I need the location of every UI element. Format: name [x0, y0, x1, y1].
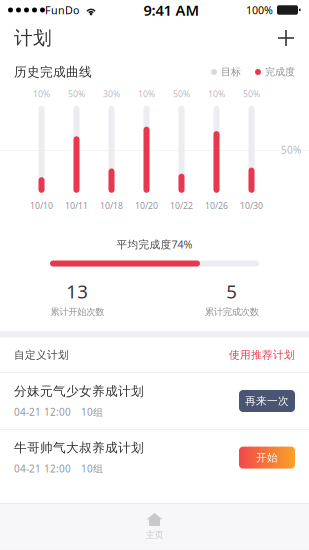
staticText: 50% [281, 143, 301, 157]
staticText: 10/10 [30, 200, 53, 212]
staticText: 10/22 [170, 200, 193, 212]
staticText: 平均完成度74% [116, 237, 192, 251]
staticText: 计划 [14, 26, 52, 50]
staticText: 10% [138, 88, 155, 100]
staticText: 牛哥帅气大叔养成计划 [14, 440, 144, 456]
staticText: 累计开始次数 [50, 306, 104, 318]
staticText: 04-21 12:00 [14, 405, 71, 419]
staticText: 04-21 12:00 [14, 462, 71, 475]
staticText: 10/30 [240, 200, 263, 212]
staticText: 9:41 AM [143, 0, 199, 20]
staticText: 10/26 [205, 200, 228, 212]
staticText: 10组 [81, 405, 103, 419]
staticText: FunDo [45, 3, 79, 17]
staticText: 累计完成次数 [205, 306, 259, 318]
staticText: 10组 [81, 462, 103, 475]
staticText: 10% [208, 88, 225, 100]
staticText: 50% [68, 88, 85, 100]
staticText: 13 [66, 278, 88, 304]
staticText: 5 [226, 278, 237, 304]
staticText: 10/11 [65, 200, 88, 212]
staticText: 使用推荐计划 [229, 348, 295, 362]
staticText: 10% [33, 88, 50, 100]
staticText: 50% [243, 88, 260, 100]
staticText: 目标 [221, 66, 241, 78]
staticText: 开始 [256, 451, 278, 464]
staticText: 再来一次 [245, 394, 289, 408]
staticText: 10/18 [100, 200, 123, 212]
staticText: 分妹元气少女养成计划 [14, 383, 144, 399]
button[interactable]: 再来一次 [239, 390, 295, 412]
staticText: 30% [103, 88, 120, 100]
staticText: 50% [173, 88, 190, 100]
staticText: 自定义计划 [14, 348, 69, 362]
staticText: 10/20 [135, 200, 158, 212]
button[interactable]: 使用推荐计划 [229, 348, 295, 362]
staticText: 100% [246, 3, 273, 17]
staticText: 主页 [145, 529, 163, 541]
button[interactable]: Add plan [277, 29, 295, 47]
staticText: 历史完成曲线 [14, 64, 92, 80]
button[interactable]: 开始 [239, 447, 295, 469]
button[interactable]: 主页 [0, 504, 309, 550]
staticText: 完成度 [265, 66, 295, 78]
